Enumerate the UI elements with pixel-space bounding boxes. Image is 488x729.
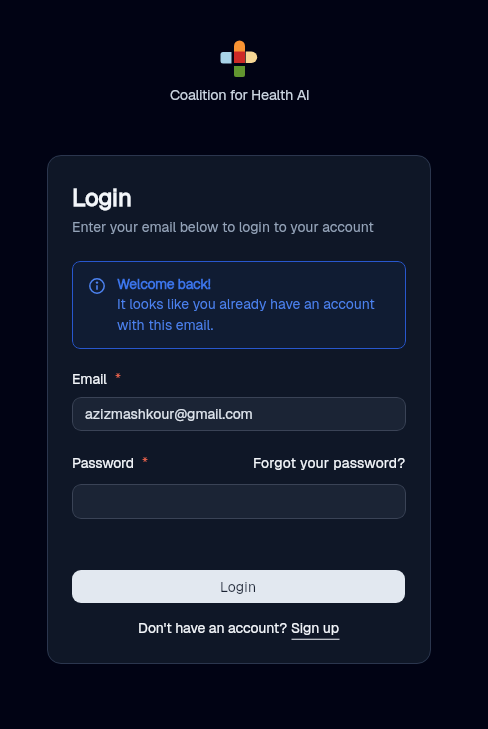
staticText: azizmashkour@gmail.com <box>85 405 253 423</box>
staticText: Login <box>72 182 132 213</box>
button[interactable]: Forgot your password? <box>253 454 406 472</box>
staticText: Login <box>220 578 257 596</box>
staticText: Enter your email below to login to your … <box>72 218 374 236</box>
staticText: * <box>142 454 149 472</box>
button[interactable]: Sign up <box>291 619 340 637</box>
staticText: Welcome back! <box>117 275 211 293</box>
button[interactable] <box>72 484 406 519</box>
button[interactable]: azizmashkour@gmail.com <box>72 397 406 431</box>
staticText: Password <box>72 454 134 472</box>
staticText: Email <box>72 370 107 388</box>
button[interactable]: Login <box>72 570 405 603</box>
staticText: * <box>115 370 122 388</box>
staticText: Coalition for Health AI <box>170 85 310 104</box>
staticText: It looks like you already have an accoun… <box>117 295 375 334</box>
staticText: Don't have an account? <box>138 619 291 637</box>
